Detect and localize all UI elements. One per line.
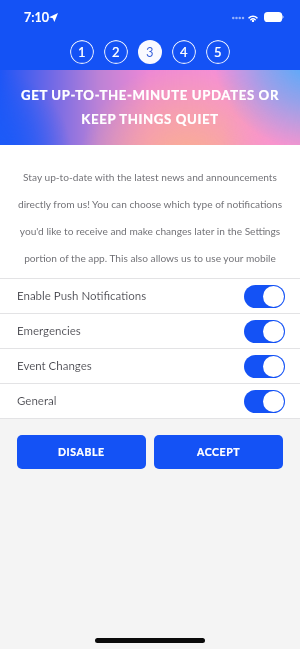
button[interactable]: Enable Push Notifications	[0, 279, 300, 313]
staticText: DISABLE	[58, 446, 105, 459]
staticText: General	[17, 394, 57, 408]
staticText: Emergencies	[17, 324, 81, 338]
button[interactable]: Emergencies	[0, 314, 300, 348]
staticText: 5	[214, 44, 222, 60]
staticText: GET UP-TO-THE-MINUTE UPDATES OR KEEP THI…	[0, 87, 300, 127]
button[interactable]: 5	[206, 40, 230, 64]
staticText: Event Changes	[17, 359, 92, 373]
other: Toggle Event Changes	[244, 355, 285, 378]
button[interactable]: General	[0, 384, 300, 418]
staticText: Enable Push Notifications	[17, 289, 147, 303]
staticText: 1	[78, 44, 86, 60]
staticText: Stay up-to-date with the latest news and…	[17, 171, 283, 264]
staticText: 3	[146, 44, 154, 60]
button[interactable]: 3	[138, 40, 162, 64]
other: Toggle Emergencies	[244, 320, 285, 343]
button[interactable]: 2	[104, 40, 128, 64]
button[interactable]: ACCEPT	[154, 435, 283, 469]
other: Toggle General	[244, 390, 285, 413]
staticText: 2	[112, 44, 120, 60]
staticText: 4	[180, 44, 188, 60]
button[interactable]: 4	[172, 40, 196, 64]
button[interactable]: 1	[70, 40, 94, 64]
other: Toggle Enable Push Notifications	[244, 285, 285, 308]
staticText: 7:10	[24, 10, 49, 25]
staticText: ACCEPT	[197, 446, 241, 459]
button[interactable]: Event Changes	[0, 349, 300, 383]
button[interactable]: DISABLE	[17, 435, 146, 469]
